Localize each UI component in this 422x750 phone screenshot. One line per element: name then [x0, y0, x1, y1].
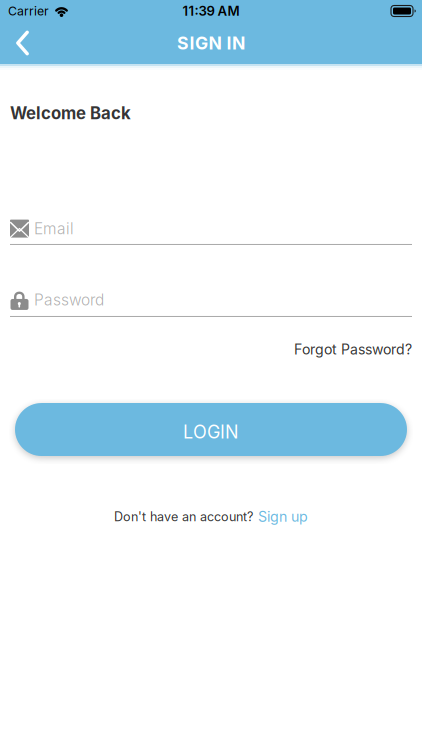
button[interactable]: LOGIN — [15, 403, 407, 456]
staticText: Email — [34, 219, 74, 238]
staticText: Forgot Password? — [294, 341, 412, 358]
staticText: Welcome Back — [10, 103, 131, 123]
staticText: Don't have an account? — [114, 509, 253, 524]
staticText: LOGIN — [183, 421, 239, 443]
staticText: Sign up — [258, 508, 308, 525]
button[interactable]: Back — [0, 22, 41, 64]
staticText: SIGN IN — [177, 32, 245, 54]
staticText: Password — [34, 291, 104, 309]
button[interactable]: Sign up — [258, 508, 308, 525]
staticText: Carrier — [8, 4, 49, 18]
staticText: 11:39 AM — [182, 3, 239, 19]
button[interactable]: Forgot Password? — [294, 341, 412, 358]
